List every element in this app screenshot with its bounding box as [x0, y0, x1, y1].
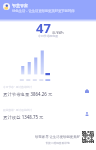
staticText: 今日节省用电量 — [38, 34, 59, 38]
staticText: 长按二维码查看详情 — [45, 141, 70, 144]
staticText: 智慧管家 — [12, 3, 28, 8]
staticText: 今日节省 · 累计数据统计 — [3, 85, 32, 89]
staticText: 绿色生活，让生活更智能更美好更节能环保 — [12, 9, 75, 13]
button[interactable]: Profile — [3, 3, 10, 10]
staticText: 47 — [36, 19, 51, 37]
staticText: 智慧家居 让生活更智能更美好 — [35, 134, 80, 139]
button[interactable]: 收益数据 · 累计收益统计 — [3, 108, 89, 120]
staticText: 收益数据 · 累计收益统计 — [3, 108, 32, 112]
staticText: 度/kWh — [52, 30, 64, 35]
staticText: 累计节省电量 3864.26 元 — [3, 91, 53, 97]
button[interactable]: 今日节省 · 累计数据统计 — [3, 85, 89, 97]
staticText: 累计收益 1348.75 元 — [3, 114, 44, 120]
button[interactable]: QR code — [82, 131, 94, 143]
